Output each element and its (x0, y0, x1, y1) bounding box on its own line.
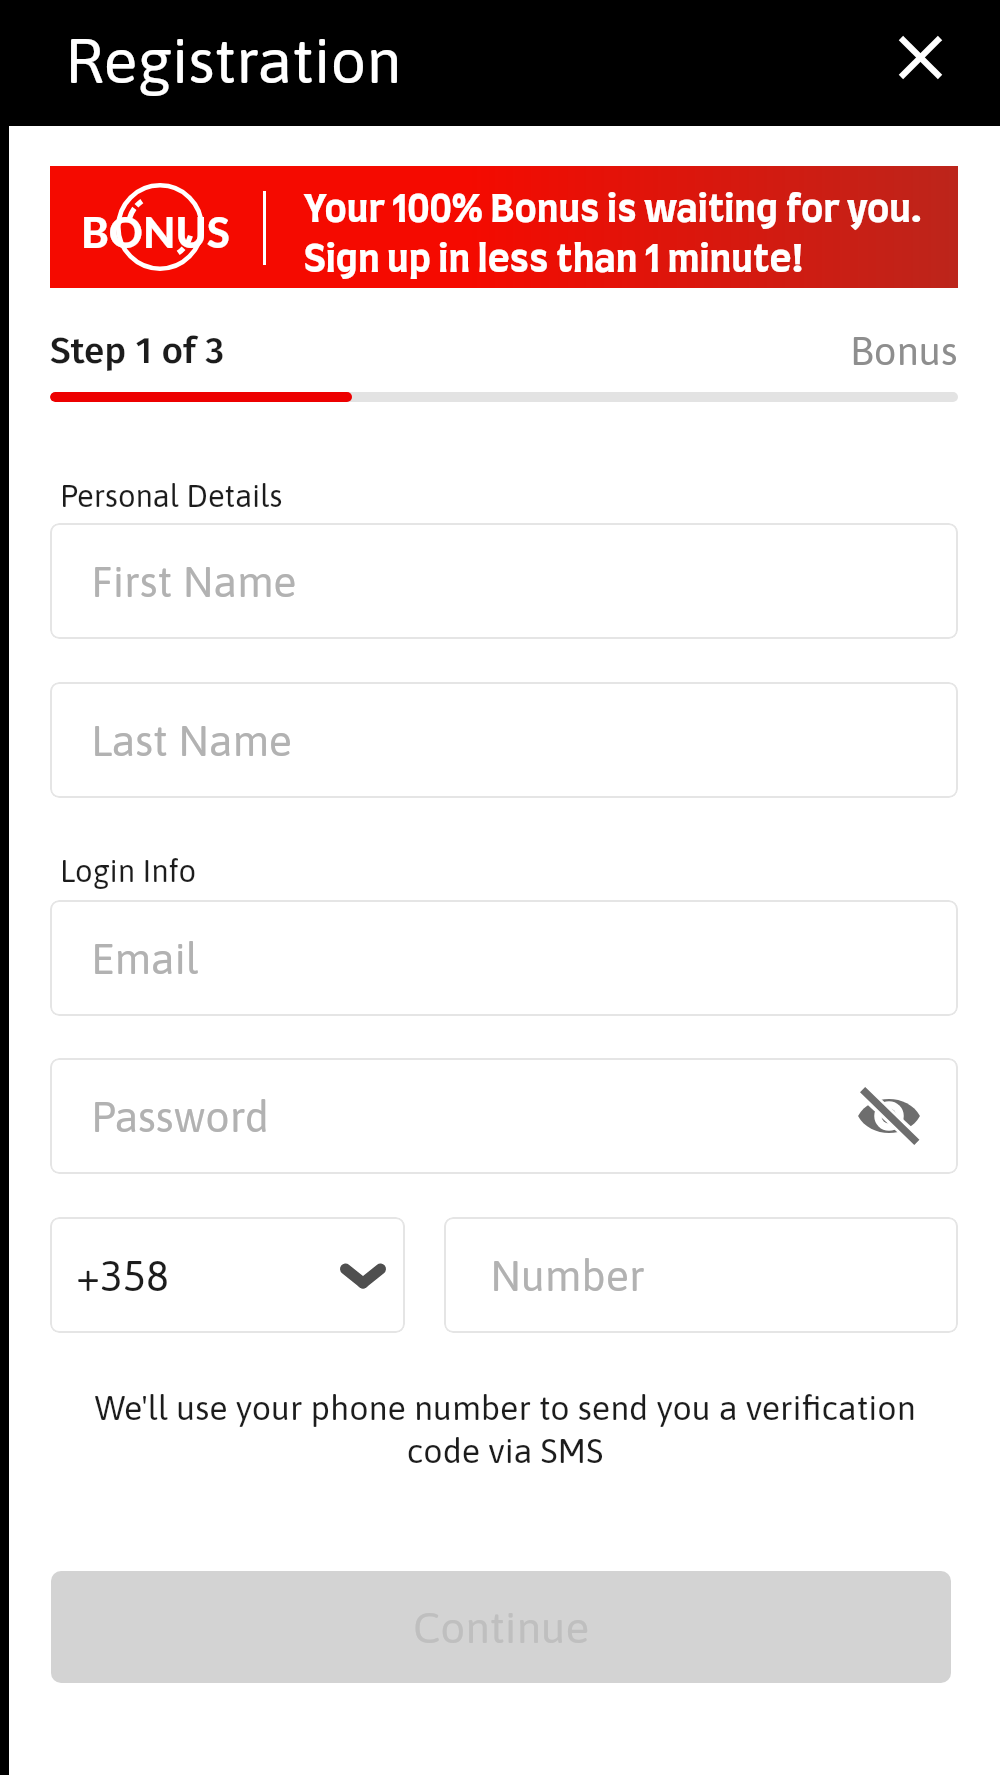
staticText: First Name (91, 557, 297, 606)
staticText: Registration (65, 24, 402, 96)
button[interactable]: Last Name (50, 682, 958, 798)
button[interactable]: First Name (50, 523, 958, 639)
staticText: Continue (413, 1602, 590, 1652)
button[interactable]: Password (50, 1058, 958, 1174)
staticText: Login Info (60, 853, 197, 889)
button[interactable]: Email (50, 900, 958, 1016)
staticText: +358 (76, 1251, 170, 1300)
staticText: Password (91, 1092, 269, 1141)
staticText: Email (91, 934, 199, 983)
staticText: Sign up in less than 1 minute! (304, 242, 804, 280)
button[interactable]: Show password (853, 1080, 925, 1152)
button[interactable]: Number (444, 1217, 958, 1333)
button[interactable]: BONUS (50, 166, 958, 288)
staticText: Step 1 of 3 (50, 328, 225, 372)
staticText: Number (490, 1251, 645, 1300)
staticText: Your 100% Bonus is waiting for you. (304, 192, 922, 230)
staticText: Personal Details (60, 478, 283, 514)
staticText: Bonus (850, 328, 958, 374)
staticText: BONUS (81, 207, 230, 257)
button[interactable]: +358 (50, 1217, 405, 1333)
staticText: We'll use your phone number to send you … (84, 1388, 926, 1470)
staticText: Last Name (91, 716, 293, 765)
button[interactable]: Close (884, 21, 957, 94)
